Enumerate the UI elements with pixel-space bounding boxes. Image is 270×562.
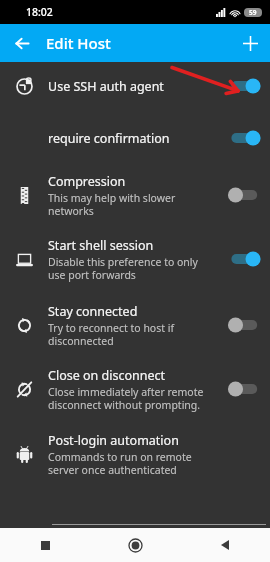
staticText: Close on disconnect	[48, 367, 165, 384]
staticText: Commands to run on remote server once au…	[48, 450, 218, 477]
staticText: Stay connected	[48, 303, 138, 320]
button[interactable]: Stay connected	[0, 294, 270, 356]
button[interactable]: Home	[90, 528, 180, 562]
staticText: Try to reconnect to host if disconnected	[48, 321, 218, 348]
button[interactable]: Close on disconnect	[0, 356, 270, 422]
button[interactable]: Back	[180, 528, 270, 562]
button[interactable]: On	[230, 77, 264, 95]
staticText: Start shell session	[48, 237, 154, 254]
button[interactable]: Post-login automation	[0, 422, 270, 486]
button[interactable]: Compression	[0, 166, 270, 224]
button[interactable]: Recent apps	[0, 528, 90, 562]
staticText: Compression	[48, 173, 126, 190]
button[interactable]: On	[230, 250, 264, 268]
button[interactable]: Off	[230, 380, 264, 398]
button[interactable]: Use SSH auth agent	[0, 62, 270, 110]
staticText: 59	[249, 8, 257, 17]
staticText: require confirmation	[48, 130, 170, 147]
button[interactable]: Start shell session	[0, 224, 270, 294]
button[interactable]: On	[230, 129, 264, 147]
staticText: Post-login automation	[48, 432, 179, 449]
staticText: 18:02	[26, 5, 53, 19]
staticText: Edit Host	[46, 33, 111, 53]
staticText: Close immediately after remote disconnec…	[48, 385, 218, 412]
button[interactable]: require confirmation	[0, 110, 270, 166]
staticText: This may help with slower networks	[48, 191, 218, 218]
button[interactable]: Navigate up	[6, 27, 38, 59]
button[interactable]: Off	[230, 186, 264, 204]
button[interactable]: Add host	[234, 27, 266, 59]
button[interactable]: Off	[230, 316, 264, 334]
staticText: Disable this preference to only use port…	[48, 255, 218, 282]
staticText: Use SSH auth agent	[48, 78, 164, 95]
